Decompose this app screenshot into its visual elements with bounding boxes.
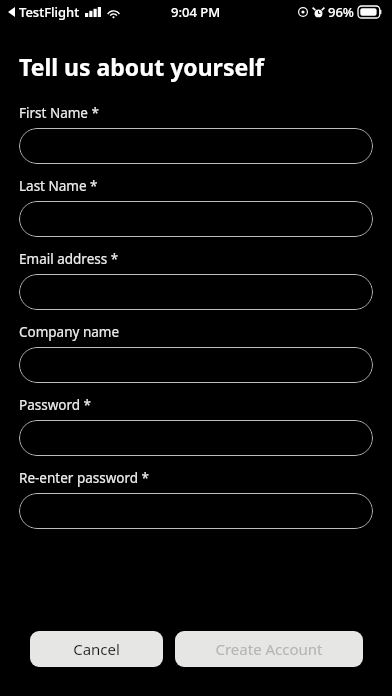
button[interactable]: Create Account [175,631,363,667]
staticText: Last Name * [19,177,98,195]
staticText: Create Account [215,639,323,659]
staticText: Re-enter password * [19,469,150,487]
staticText: 9:04 PM [171,3,221,21]
staticText: First Name * [19,104,99,122]
staticText: Email address * [19,250,119,268]
button[interactable]: Email address * [19,274,373,310]
staticText: Password * [19,396,92,414]
button[interactable]: Re-enter password * [19,493,373,529]
staticText: Tell us about yourself [19,51,264,82]
button[interactable]: Password * [19,420,373,456]
button[interactable]: Company name [19,347,373,383]
staticText: Company name [19,323,120,341]
button[interactable]: Cancel [30,631,163,667]
staticText: 96% [328,3,354,21]
button[interactable]: First Name * [19,128,373,164]
staticText: Cancel [73,639,120,659]
button[interactable]: Last Name * [19,201,373,237]
staticText: TestFlight [19,3,80,21]
